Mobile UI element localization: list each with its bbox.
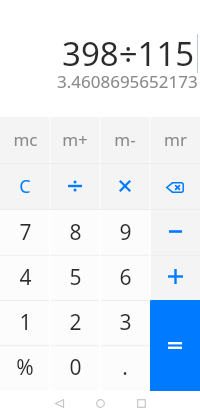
- staticText: mc: [13, 128, 38, 151]
- staticText: 7: [19, 218, 32, 247]
- button[interactable]: mr: [150, 117, 200, 164]
- button[interactable]: 3: [100, 301, 150, 346]
- button[interactable]: 5: [50, 256, 100, 301]
- button[interactable]: Plus: [150, 255, 200, 300]
- button[interactable]: 8: [50, 210, 100, 256]
- staticText: 0: [69, 353, 82, 382]
- button[interactable]: .: [100, 346, 150, 391]
- button[interactable]: C: [0, 164, 50, 210]
- staticText: 1: [19, 308, 32, 337]
- button[interactable]: m-: [100, 117, 150, 164]
- staticText: 3.4608695652173: [57, 70, 198, 93]
- button[interactable]: mc: [0, 117, 50, 164]
- button[interactable]: 4: [0, 256, 50, 301]
- staticText: 9: [119, 218, 132, 247]
- staticText: 4: [19, 263, 32, 292]
- staticText: 6: [119, 263, 132, 292]
- button[interactable]: Backspace: [150, 164, 200, 210]
- staticText: 3: [119, 308, 132, 337]
- staticText: %: [16, 353, 34, 382]
- button[interactable]: 7: [0, 210, 50, 256]
- button[interactable]: Multiply: [100, 164, 150, 210]
- button[interactable]: Minus: [150, 210, 200, 255]
- staticText: .: [122, 353, 128, 382]
- staticText: mr: [164, 128, 187, 151]
- button[interactable]: Home: [83, 391, 117, 415]
- button[interactable]: 0: [50, 346, 100, 391]
- button[interactable]: %: [0, 346, 50, 391]
- staticText: 8: [69, 218, 82, 247]
- button[interactable]: 9: [100, 210, 150, 256]
- button[interactable]: Back: [42, 391, 76, 415]
- button[interactable]: 1: [0, 301, 50, 346]
- staticText: m-: [114, 128, 136, 151]
- button[interactable]: 6: [100, 256, 150, 301]
- button[interactable]: Divide: [50, 164, 100, 210]
- button[interactable]: Recent apps: [124, 391, 158, 415]
- staticText: 5: [69, 263, 82, 292]
- staticText: 398÷115: [62, 31, 195, 76]
- button[interactable]: m+: [50, 117, 100, 164]
- staticText: C: [19, 174, 31, 199]
- button[interactable]: Equals: [150, 300, 200, 391]
- staticText: m+: [62, 128, 88, 151]
- button[interactable]: 2: [50, 301, 100, 346]
- staticText: 2: [69, 308, 82, 337]
